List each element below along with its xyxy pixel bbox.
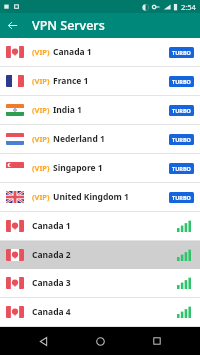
staticText: Canada 4 bbox=[32, 306, 71, 318]
button[interactable]: Canada 1 bbox=[0, 212, 200, 240]
staticText: 2:54 bbox=[181, 2, 196, 12]
staticText: (VIP) bbox=[32, 105, 50, 115]
staticText: France 1 bbox=[53, 75, 89, 87]
staticText: TURBO bbox=[172, 49, 191, 56]
staticText: (VIP) bbox=[32, 134, 50, 144]
staticText: Nederland 1 bbox=[53, 133, 105, 145]
button[interactable]: Canada 2 bbox=[0, 241, 200, 269]
button[interactable]: Back bbox=[0, 13, 25, 38]
button[interactable]: (VIP) bbox=[0, 67, 200, 95]
button[interactable]: Back bbox=[29, 327, 57, 355]
staticText: Canada 3 bbox=[32, 277, 71, 289]
staticText: (VIP) bbox=[32, 163, 50, 173]
button[interactable]: (VIP) bbox=[0, 96, 200, 124]
staticText: Canada 2 bbox=[32, 249, 71, 261]
staticText: TURBO bbox=[172, 78, 191, 85]
button[interactable]: (VIP) bbox=[0, 183, 200, 211]
staticText: United Kingdom 1 bbox=[53, 191, 129, 203]
staticText: Singapore 1 bbox=[53, 162, 103, 174]
staticText: (VIP) bbox=[32, 192, 50, 202]
staticText: Canada 1 bbox=[32, 220, 71, 232]
button[interactable]: Recent apps bbox=[143, 327, 171, 355]
button[interactable]: Canada 4 bbox=[0, 298, 200, 326]
staticText: TURBO bbox=[172, 136, 191, 143]
button[interactable]: (VIP) bbox=[0, 38, 200, 66]
staticText: VPN Servers bbox=[32, 17, 105, 34]
staticText: (VIP) bbox=[32, 47, 50, 57]
staticText: Canada 1 bbox=[53, 46, 92, 58]
staticText: TURBO bbox=[172, 194, 191, 201]
staticText: (VIP) bbox=[32, 76, 50, 86]
staticText: India 1 bbox=[53, 104, 82, 116]
staticText: TURBO bbox=[172, 165, 191, 172]
staticText: TURBO bbox=[172, 107, 191, 114]
button[interactable]: (VIP) bbox=[0, 125, 200, 153]
button[interactable]: (VIP) bbox=[0, 154, 200, 182]
button[interactable]: Canada 3 bbox=[0, 269, 200, 297]
button[interactable]: Home bbox=[86, 327, 114, 355]
